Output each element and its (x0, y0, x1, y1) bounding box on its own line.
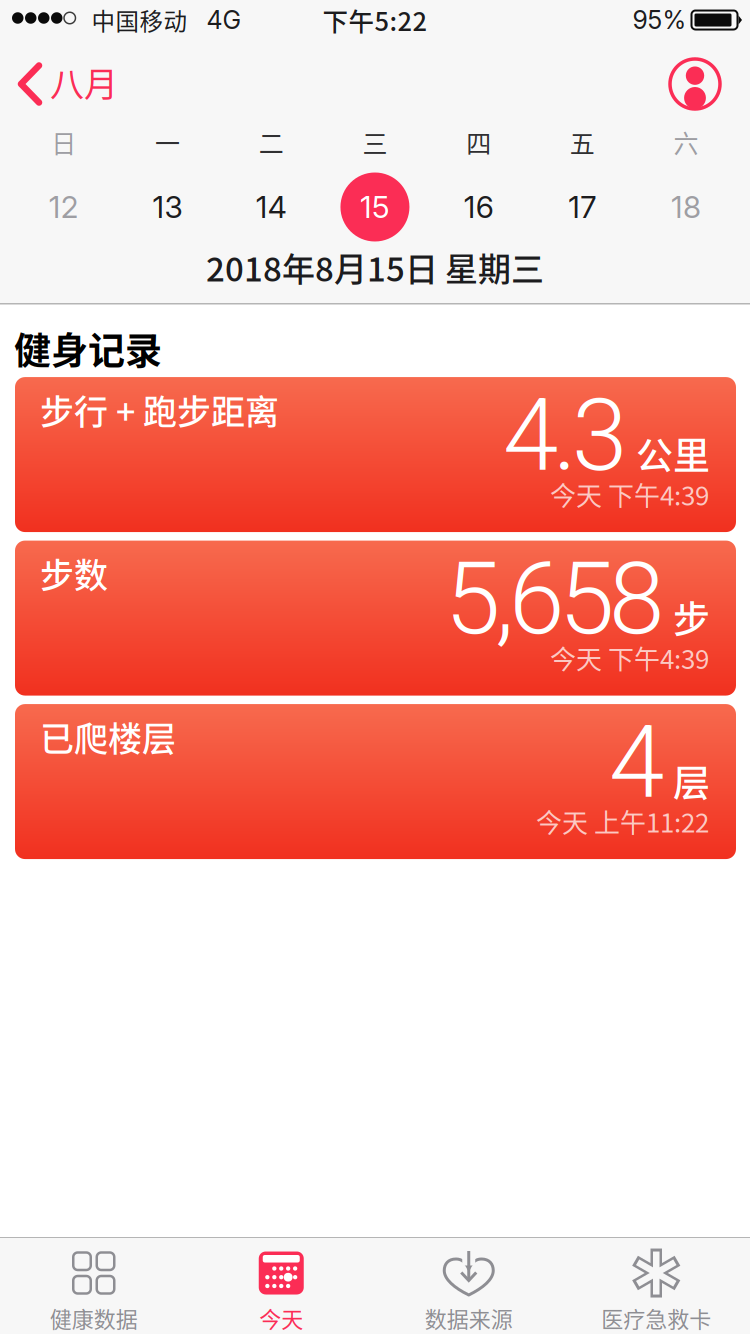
staticText: 下午5:22 (322, 1, 427, 38)
staticText: 六 (674, 124, 699, 160)
staticText: 五 (570, 124, 595, 160)
staticText: 今天 下午4:39 (550, 475, 709, 513)
staticText: 2018年8月15日 星期三 (206, 243, 544, 291)
staticText: 今天 上午11:22 (536, 802, 709, 840)
staticText: 步数 (40, 549, 108, 598)
staticText: 5,658 (445, 541, 664, 658)
staticText: 三 (362, 124, 387, 160)
staticText: 95% (632, 5, 686, 35)
staticText: 16 (464, 189, 494, 225)
staticText: 17 (568, 189, 596, 225)
staticText: 中国移动 (91, 3, 187, 37)
staticText: 健身记录 (14, 321, 162, 375)
staticText: 今天 下午4:39 (550, 639, 709, 676)
staticText: 一 (155, 124, 180, 160)
staticText: 二 (259, 124, 284, 160)
staticText: 4 (609, 704, 664, 821)
staticText: 4G (206, 5, 241, 35)
staticText: 步行 + 跑步距离 (40, 385, 279, 434)
staticText: 健康数据 (50, 1302, 138, 1334)
staticText: 日 (51, 124, 76, 160)
staticText: 14 (256, 189, 287, 225)
staticText: 18 (671, 189, 701, 225)
staticText: 15 (360, 189, 390, 225)
staticText: 4.3 (503, 377, 627, 494)
staticText: 13 (153, 189, 183, 225)
staticText: 医疗急救卡 (601, 1302, 711, 1334)
staticText: 层 (673, 754, 710, 807)
staticText: 数据来源 (425, 1302, 513, 1334)
staticText: 今天 (259, 1302, 303, 1334)
staticText: 公里 (636, 427, 710, 480)
staticText: 四 (466, 124, 491, 160)
staticText: 12 (49, 189, 79, 225)
staticText: 步 (673, 590, 710, 644)
staticText: 已爬楼层 (40, 712, 176, 761)
staticText: 八月 (50, 57, 118, 107)
